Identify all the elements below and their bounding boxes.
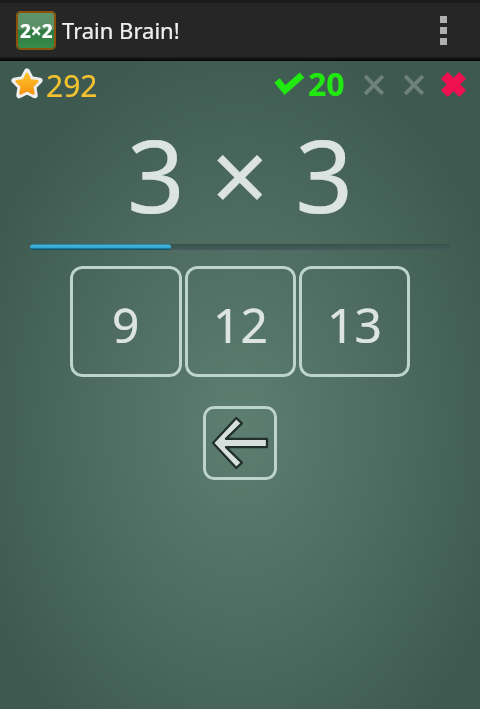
staticText: 292 (46, 65, 98, 101)
staticText: 13 (327, 292, 382, 357)
button[interactable]: 12 (185, 266, 296, 377)
button[interactable]: Score 292 stars (8, 64, 92, 100)
staticText: 20 (308, 62, 345, 106)
staticText: 2×2 (20, 18, 53, 44)
button[interactable]: More options (420, 7, 466, 53)
staticText: 3 × 3 (127, 105, 353, 243)
button[interactable]: Back (203, 406, 277, 480)
button[interactable]: 9 (70, 266, 182, 377)
staticText: 9 (112, 292, 140, 357)
staticText: Train Brain! (62, 15, 180, 45)
staticText: 12 (213, 292, 268, 357)
button[interactable]: Correct answers 20 (273, 68, 307, 98)
button[interactable]: 13 (299, 266, 410, 377)
